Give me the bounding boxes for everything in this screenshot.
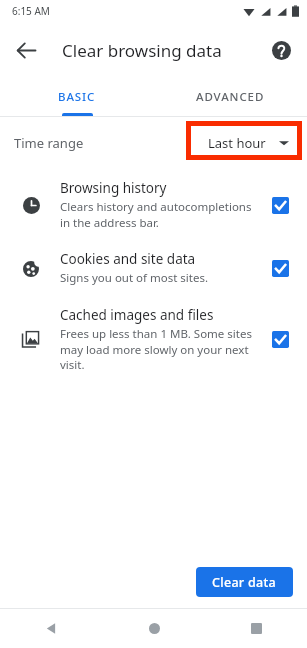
button[interactable]: Cookies and site data <box>0 240 307 296</box>
staticText: Clear browsing data <box>62 39 222 62</box>
button[interactable]: Back <box>0 609 103 648</box>
button[interactable]: Browsing history <box>0 169 307 240</box>
button[interactable]: Cached images and files checkbox <box>265 324 295 354</box>
staticText: Last hour <box>208 134 266 152</box>
staticText: ADVANCED <box>196 89 265 105</box>
button[interactable]: Recents <box>205 609 307 648</box>
button[interactable]: Clear data <box>196 567 293 597</box>
button[interactable]: Time range <box>0 117 307 169</box>
staticText: Browsing history <box>60 179 167 197</box>
button[interactable]: Cached images and files <box>0 296 307 382</box>
button[interactable]: Home <box>103 609 205 648</box>
staticText: 6:15 AM <box>12 4 50 18</box>
button[interactable]: ADVANCED <box>153 78 307 116</box>
staticText: Clear data <box>212 574 277 591</box>
button[interactable]: Back <box>6 30 46 70</box>
staticText: Frees up less than 1 MB. Some sites may … <box>60 326 257 372</box>
button[interactable]: Cookies and site data checkbox <box>265 253 295 283</box>
button[interactable]: Help <box>261 30 301 70</box>
button[interactable]: Browsing history checkbox <box>265 190 295 220</box>
staticText: Cached images and files <box>60 306 214 324</box>
staticText: Signs you out of most sites. <box>60 270 209 286</box>
staticText: Cookies and site data <box>60 250 196 268</box>
staticText: Clears history and autocompletions in th… <box>60 199 257 230</box>
button[interactable]: BASIC <box>0 78 153 116</box>
staticText: BASIC <box>58 89 96 105</box>
staticText: Time range <box>14 134 84 152</box>
